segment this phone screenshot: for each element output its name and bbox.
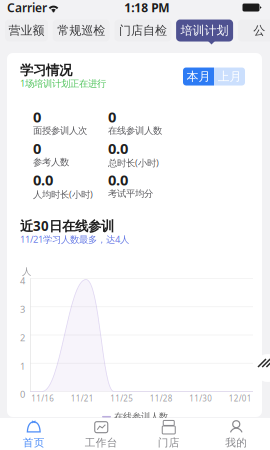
staticText: 上月 bbox=[217, 69, 241, 84]
staticText: 我的 bbox=[225, 436, 247, 449]
staticText: 在线参训人数 bbox=[108, 125, 162, 136]
staticText: 面授参训人次 bbox=[33, 125, 87, 136]
staticText: 0 bbox=[108, 107, 116, 126]
staticText: 人均时长(小时) bbox=[33, 188, 93, 200]
staticText: 11/21 bbox=[71, 393, 94, 404]
button[interactable]: Quick actions bbox=[254, 354, 270, 382]
button[interactable]: 门店自检 bbox=[114, 19, 171, 41]
staticText: 门店自检 bbox=[119, 23, 167, 38]
staticText: 0 bbox=[33, 138, 41, 158]
button[interactable]: 公 bbox=[238, 19, 270, 41]
staticText: Carrier bbox=[7, 0, 47, 15]
staticText: 首页 bbox=[23, 436, 45, 449]
staticText: 0.0 bbox=[108, 138, 128, 158]
staticText: 0 bbox=[33, 107, 41, 126]
button[interactable]: 营业额 bbox=[5, 19, 48, 41]
staticText: 人 bbox=[22, 266, 31, 277]
staticText: 11/21学习人数最多，达4人 bbox=[20, 233, 129, 245]
staticText: 学习情况 bbox=[20, 62, 72, 78]
button[interactable]: 培训计划 bbox=[176, 19, 233, 41]
staticText: 11/30 bbox=[189, 393, 212, 404]
staticText: 常规巡检 bbox=[57, 23, 105, 38]
button[interactable]: 门店 bbox=[135, 415, 202, 450]
staticText: 4 bbox=[20, 274, 25, 287]
staticText: 近30日在线参训 bbox=[20, 217, 114, 235]
staticText: 12/01 bbox=[229, 393, 252, 404]
staticText: 参考人数 bbox=[33, 156, 69, 168]
staticText: 考试平均分 bbox=[108, 188, 153, 199]
button[interactable]: 上月 bbox=[214, 67, 245, 85]
button[interactable]: 首页 bbox=[0, 415, 67, 450]
button[interactable]: 本月 bbox=[183, 67, 214, 85]
staticText: 0 bbox=[20, 388, 25, 400]
staticText: 门店 bbox=[158, 436, 180, 449]
staticText: 11/28 bbox=[150, 393, 173, 404]
staticText: 工作台 bbox=[85, 436, 118, 449]
staticText: 0.0 bbox=[108, 170, 128, 189]
staticText: 1 bbox=[20, 360, 25, 372]
staticText: 11/16 bbox=[31, 393, 54, 404]
staticText: 营业额 bbox=[8, 23, 44, 38]
staticText: 1:18 PM bbox=[124, 0, 169, 15]
staticText: 培训计划 bbox=[181, 23, 229, 38]
staticText: 11/25 bbox=[110, 393, 133, 404]
staticText: 总时长(小时) bbox=[108, 156, 159, 169]
staticText: 在线参训人数 bbox=[114, 411, 168, 422]
button[interactable]: 工作台 bbox=[67, 415, 135, 450]
button[interactable]: 常规巡检 bbox=[53, 19, 110, 41]
staticText: 3 bbox=[20, 303, 25, 315]
staticText: 0.0 bbox=[33, 170, 53, 189]
staticText: 1场培训计划正在进行 bbox=[20, 77, 106, 89]
button[interactable]: 我的 bbox=[202, 415, 270, 450]
staticText: 2 bbox=[20, 331, 25, 344]
staticText: 公 bbox=[253, 23, 265, 38]
staticText: 本月 bbox=[186, 69, 210, 84]
